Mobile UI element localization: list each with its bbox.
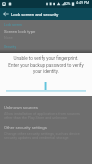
staticText: Screen lock type	[4, 29, 36, 34]
button[interactable]: Screen lock type	[0, 29, 92, 40]
staticText: Change other security settings, such as …	[4, 132, 80, 140]
staticText: Lock screen and security	[11, 12, 59, 17]
staticText: Allow installation of applications from …	[4, 112, 81, 120]
button[interactable]: Other security settings	[0, 125, 92, 140]
staticText: Other security settings	[4, 125, 48, 130]
staticText: None	[4, 36, 13, 40]
staticText: Lock screen	[4, 23, 22, 27]
staticText: 4:49 PM	[76, 1, 90, 5]
staticText: Unable to verify your fingerprint. Enter…	[8, 56, 84, 74]
staticText: Security	[4, 45, 17, 49]
button[interactable]: Navigate up	[0, 8, 11, 20]
button[interactable]: Unknown sources	[0, 105, 92, 120]
staticText: Unknown sources	[4, 105, 39, 110]
staticText: 32%	[64, 2, 71, 6]
